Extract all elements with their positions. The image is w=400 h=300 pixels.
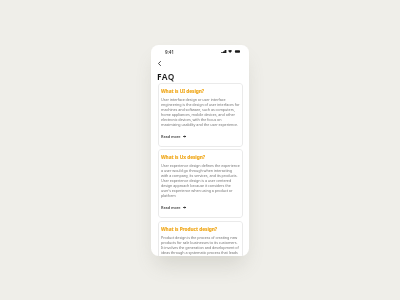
staticText: User experience design defines the exper… [161,163,240,198]
staticText: What is Ux design? [161,154,205,161]
staticText: 9:41 [165,49,174,55]
staticText: What is Product design? [161,226,218,233]
staticText: Read more [161,205,181,210]
button[interactable]: What is UI design? [158,83,243,147]
staticText: FAQ [157,71,175,82]
button[interactable]: Back [153,57,165,69]
button[interactable]: What is Ux design? [158,149,243,218]
button[interactable]: What is Product design? [158,221,243,256]
staticText: What is UI design? [161,88,205,95]
staticText: Read more [161,134,181,139]
staticText: Product design is the process of creatin… [161,235,240,255]
staticText: User interface design or user interface … [161,97,240,127]
